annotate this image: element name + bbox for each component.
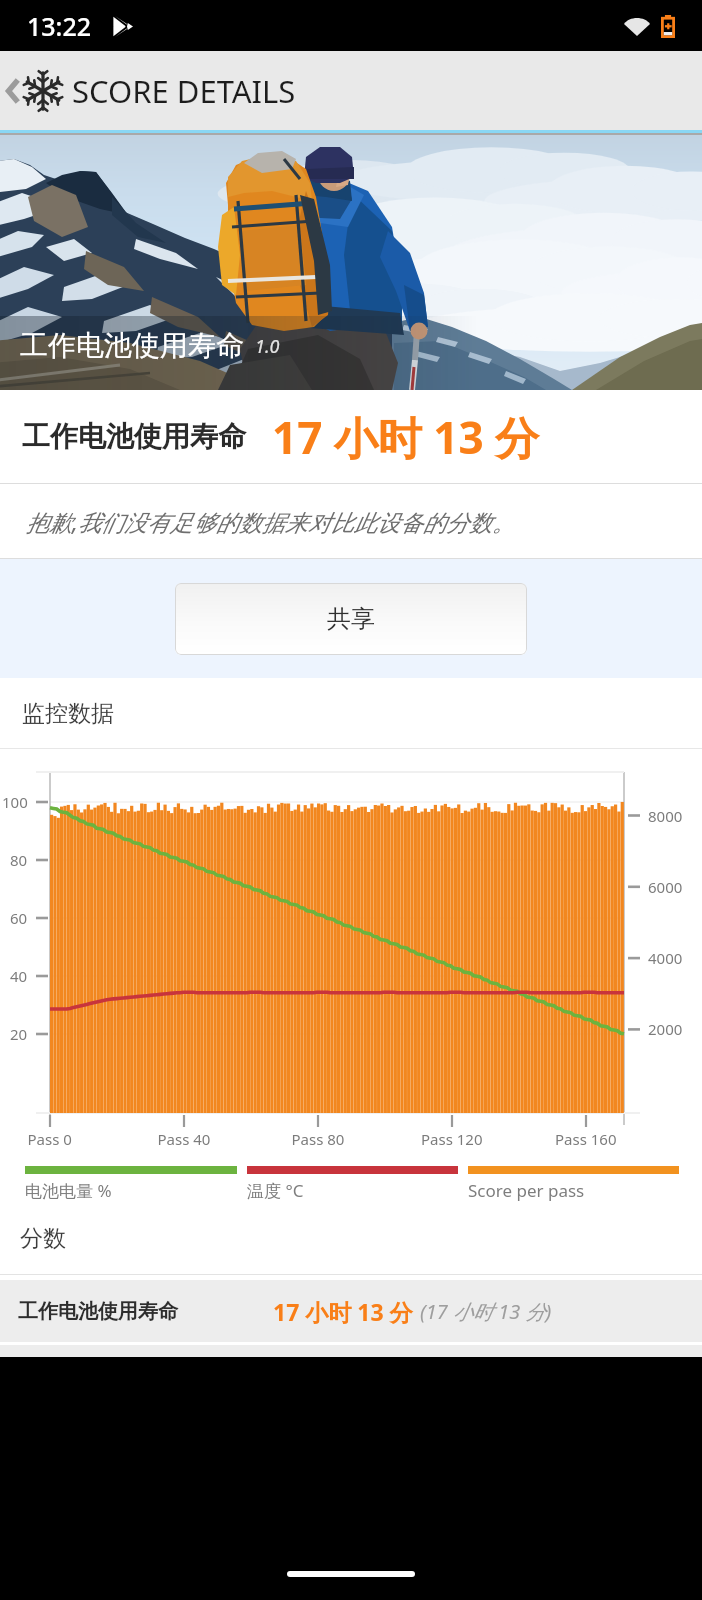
staticText: (17 小时 13 分) [420,1298,552,1325]
staticText: 17 小时 13 分 [272,407,539,467]
staticText: Score per pass [468,1179,585,1202]
button[interactable]: Back [0,51,702,130]
staticText: 工作电池使用寿命 [22,419,246,454]
staticText: SCORE DETAILS [72,70,296,112]
staticText: 共享 [327,604,375,634]
staticText: 1.0 [255,334,280,359]
button[interactable]: 工作电池使用寿命 [0,1280,702,1342]
staticText: 监控数据 [22,699,114,728]
staticText: 17 小时 13 分 [273,1296,413,1327]
staticText: 分数 [20,1224,66,1253]
staticText: 13:22 [27,9,92,43]
button[interactable]: 共享 [175,583,527,655]
other: Back [5,78,21,104]
staticText: 温度 °C [247,1179,304,1202]
staticText: 工作电池使用寿命 [18,1299,178,1324]
staticText: 工作电池使用寿命 [20,328,244,363]
staticText: 抱歉,我们没有足够的数据来对比此设备的分数。 [26,506,515,537]
staticText: 电池电量 % [25,1179,112,1202]
